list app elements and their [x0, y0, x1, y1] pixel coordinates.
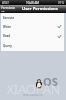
- staticText: User Permissions: [22, 6, 58, 12]
- button[interactable]: Query: [1, 41, 64, 51]
- staticText: www.xiaopan.co: [23, 93, 43, 97]
- staticText: OS: [43, 74, 58, 89]
- staticText: AT&T: [2, 1, 9, 5]
- button[interactable]: Read: [1, 31, 64, 41]
- staticText: Permissions: [1, 6, 16, 12]
- staticText: Query: [3, 44, 12, 48]
- staticText: Read: [3, 34, 11, 38]
- staticText: 10:48 AM: [26, 1, 40, 5]
- staticText: Write: [3, 25, 11, 29]
- staticText: 91%: [58, 1, 64, 5]
- button[interactable]: Permissions: [1, 6, 16, 12]
- staticText: Execute: [3, 16, 15, 20]
- button[interactable]: Write: [1, 22, 64, 31]
- staticText: XIAOPAN: [7, 80, 61, 98]
- button[interactable]: Execute: [1, 13, 64, 22]
